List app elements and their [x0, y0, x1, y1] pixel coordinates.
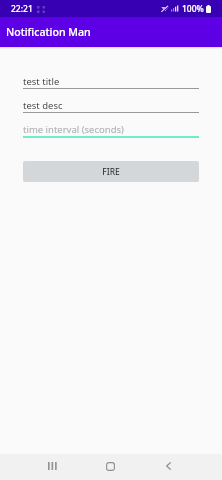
staticText: 22:21 [11, 3, 33, 15]
button[interactable]: time interval (seconds) [23, 114, 199, 138]
button[interactable]: Back [154, 453, 182, 479]
staticText: test title [23, 75, 60, 88]
staticText: test desc [23, 99, 63, 112]
staticText: FIRE [102, 166, 120, 178]
button[interactable]: test title [23, 66, 199, 89]
staticText: time interval (seconds) [23, 123, 124, 136]
staticText: Notification Man [6, 25, 91, 39]
button[interactable]: Recents [38, 453, 66, 479]
button[interactable]: Home [96, 453, 124, 479]
button[interactable]: test desc [23, 90, 199, 113]
button[interactable]: FIRE [23, 161, 199, 182]
staticText: 100% [182, 3, 204, 15]
